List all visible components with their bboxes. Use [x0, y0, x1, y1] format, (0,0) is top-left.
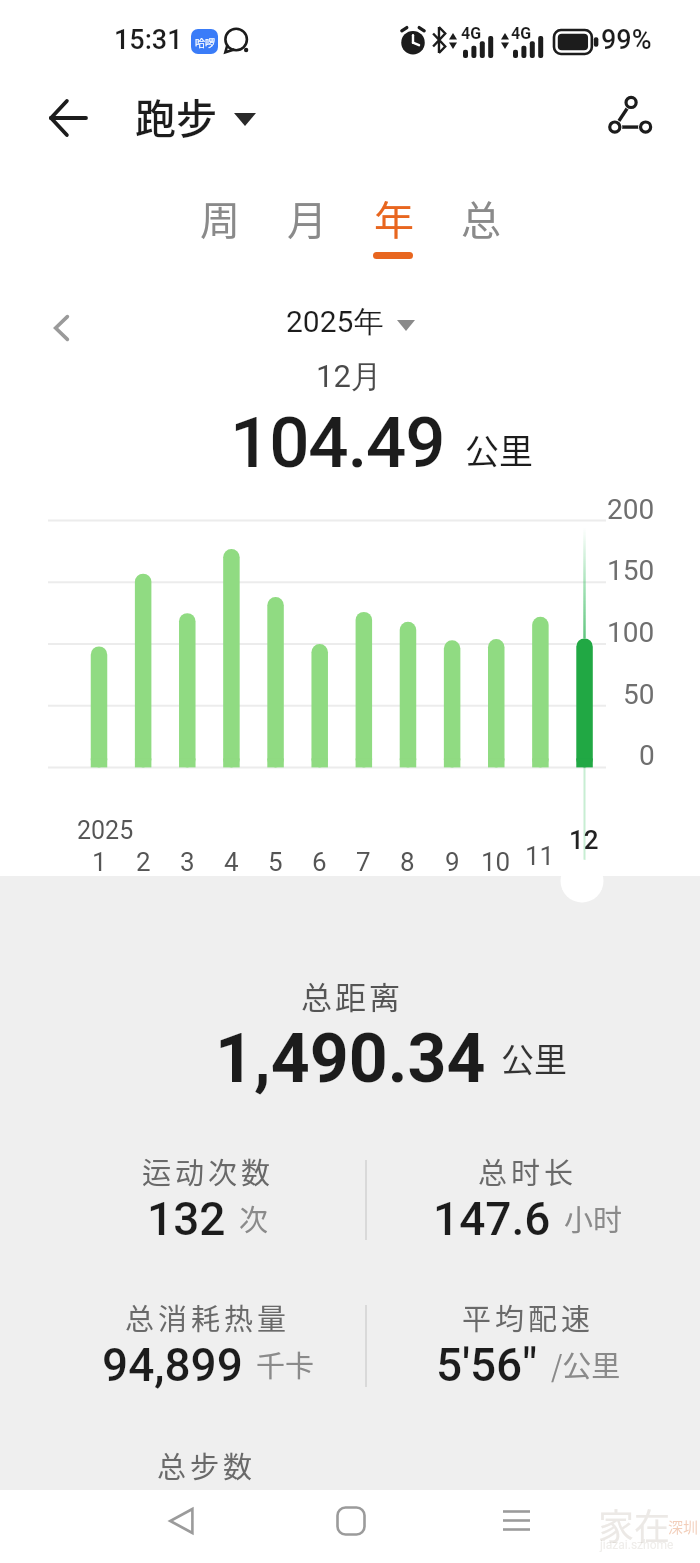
staticText: 50	[623, 678, 655, 711]
staticText: 11	[525, 841, 555, 871]
button[interactable]: 周	[176, 189, 263, 247]
button[interactable]	[38, 88, 98, 148]
staticText: 4G	[461, 24, 482, 43]
staticText: 次	[239, 1197, 269, 1239]
staticText: 3	[180, 847, 195, 877]
staticText: 运动次数	[142, 1150, 275, 1192]
staticText: 4	[224, 847, 239, 877]
staticText: jiazai.szhome	[600, 1538, 674, 1552]
button[interactable]: 月	[263, 189, 350, 247]
staticText: 跑步	[135, 86, 217, 145]
staticText: 6	[312, 847, 327, 877]
staticText: 小时	[564, 1197, 623, 1239]
staticText: 10	[481, 847, 511, 877]
staticText: 12月	[316, 357, 382, 396]
staticText: 5'56"	[436, 1338, 538, 1392]
staticText: 总时长	[478, 1150, 578, 1192]
staticText: /公里	[551, 1343, 621, 1385]
staticText: 132	[147, 1192, 226, 1246]
staticText: 总距离	[301, 973, 403, 1018]
staticText: 104.49	[230, 401, 445, 484]
staticText: 9	[445, 847, 460, 877]
staticText: 7	[356, 847, 371, 877]
staticText: 4G	[511, 24, 532, 43]
button[interactable]	[503, 1510, 530, 1531]
button[interactable]	[51, 313, 72, 343]
staticText: 年	[374, 189, 414, 247]
staticText: 2	[136, 847, 151, 877]
button[interactable]	[606, 91, 650, 135]
staticText: 100	[607, 616, 655, 649]
staticText: 总	[461, 189, 501, 247]
staticText: 家在	[598, 1498, 671, 1550]
button[interactable]: 年	[350, 189, 437, 247]
staticText: 150	[607, 554, 655, 587]
staticText: 2025	[77, 816, 134, 845]
button[interactable]: 2025年	[286, 303, 415, 341]
button[interactable]	[166, 1506, 196, 1536]
staticText: 月	[287, 189, 327, 247]
staticText: 深圳	[668, 1516, 699, 1538]
button[interactable]	[336, 1506, 366, 1536]
staticText: 0	[639, 739, 655, 772]
staticText: 公里	[465, 425, 533, 474]
staticText: 147.6	[433, 1192, 551, 1246]
staticText: 千卡	[256, 1343, 315, 1385]
button[interactable]: 跑步	[135, 86, 256, 145]
staticText: 12	[569, 825, 599, 855]
staticText: 1	[92, 847, 107, 877]
staticText: 99%	[601, 24, 652, 56]
staticText: 5	[268, 847, 283, 877]
staticText: 200	[607, 493, 655, 526]
staticText: 总消耗热量	[125, 1296, 291, 1338]
staticText: 周	[200, 189, 240, 247]
staticText: 平均配速	[462, 1296, 595, 1338]
staticText: 1,490.34	[215, 1019, 486, 1099]
staticText: 15:31	[114, 24, 183, 56]
staticText: 94,899	[102, 1338, 243, 1392]
button[interactable]: 总	[437, 189, 524, 247]
staticText: 2025年	[286, 303, 384, 341]
button[interactable]	[373, 252, 413, 259]
staticText: 8	[400, 847, 415, 877]
staticText: 公里	[501, 1034, 567, 1082]
staticText: 总步数	[157, 1444, 257, 1486]
staticText: 哈啰	[195, 35, 215, 49]
